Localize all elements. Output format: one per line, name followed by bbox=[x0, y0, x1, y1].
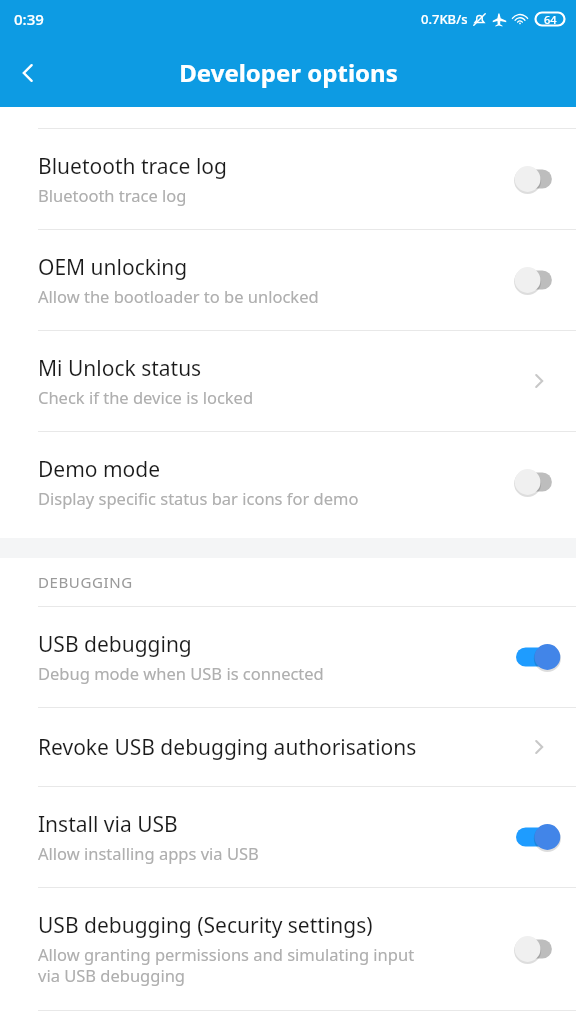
staticText: USB debugging bbox=[38, 630, 192, 659]
staticText: Bluetooth trace log bbox=[38, 184, 187, 206]
staticText: DEBUGGING bbox=[38, 572, 133, 592]
button[interactable] bbox=[516, 822, 562, 852]
button[interactable]: USB debugging (Security settings) bbox=[0, 888, 576, 1010]
staticText: 0.7KB/s bbox=[421, 10, 468, 28]
button[interactable] bbox=[516, 265, 562, 295]
staticText: Check if the device is locked bbox=[38, 386, 254, 408]
staticText: Bluetooth trace log bbox=[38, 152, 227, 181]
staticText: Allow granting permissions and simulatin… bbox=[38, 943, 415, 987]
button[interactable] bbox=[516, 467, 562, 497]
staticText: Display specific status bar icons for de… bbox=[38, 487, 359, 509]
staticText: 64 bbox=[544, 12, 557, 27]
button[interactable]: Revoke USB debugging authorisations bbox=[0, 708, 576, 786]
staticText: USB debugging (Security settings) bbox=[38, 911, 373, 940]
staticText: Allow installing apps via USB bbox=[38, 842, 259, 864]
button[interactable] bbox=[516, 164, 562, 194]
staticText: Demo mode bbox=[38, 455, 161, 484]
button[interactable] bbox=[516, 642, 562, 672]
button[interactable]: Mi Unlock status bbox=[0, 331, 576, 431]
button[interactable]: Bluetooth trace log bbox=[0, 129, 576, 229]
staticText: Allow the bootloader to be unlocked bbox=[38, 285, 319, 307]
button[interactable]: Back bbox=[0, 45, 56, 101]
staticText: Debug mode when USB is connected bbox=[38, 662, 324, 684]
button[interactable]: USB debugging bbox=[0, 607, 576, 707]
staticText: Developer options bbox=[179, 56, 398, 89]
staticText: OEM unlocking bbox=[38, 253, 188, 282]
button[interactable]: Demo mode bbox=[0, 432, 576, 532]
staticText: Mi Unlock status bbox=[38, 354, 202, 383]
button[interactable]: Install via USB bbox=[0, 787, 576, 887]
staticText: 0:39 bbox=[14, 9, 44, 29]
button[interactable] bbox=[516, 934, 562, 964]
staticText: Install via USB bbox=[38, 810, 178, 839]
button[interactable]: OEM unlocking bbox=[0, 230, 576, 330]
staticText: Revoke USB debugging authorisations bbox=[38, 733, 417, 762]
